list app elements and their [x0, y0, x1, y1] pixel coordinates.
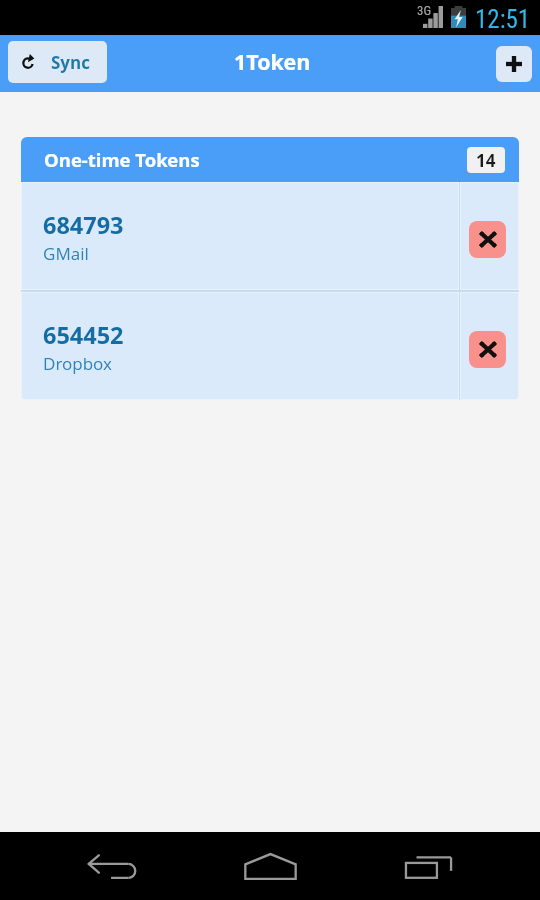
- button[interactable]: Back: [72, 836, 152, 900]
- staticText: Dropbox: [43, 352, 112, 375]
- staticText: 3G: [417, 3, 432, 18]
- button[interactable]: 14: [467, 147, 505, 173]
- staticText: 14: [476, 149, 496, 172]
- staticText: GMail: [43, 242, 89, 265]
- button[interactable]: 684793: [21, 182, 519, 290]
- button[interactable]: 654452: [21, 292, 519, 400]
- staticText: One-time Tokens: [44, 147, 200, 172]
- button[interactable]: Delete Dropbox token: [469, 331, 506, 368]
- staticText: 1Token: [234, 47, 311, 76]
- button[interactable]: Add token: [496, 46, 532, 82]
- staticText: 654452: [43, 319, 124, 351]
- button[interactable]: Delete GMail token: [469, 221, 506, 258]
- button[interactable]: Recent apps: [389, 834, 469, 900]
- staticText: 684793: [43, 209, 124, 241]
- button[interactable]: Sync: [8, 41, 107, 83]
- staticText: 12:51: [475, 5, 531, 34]
- staticText: Sync: [51, 51, 90, 74]
- button[interactable]: Home: [230, 832, 310, 900]
